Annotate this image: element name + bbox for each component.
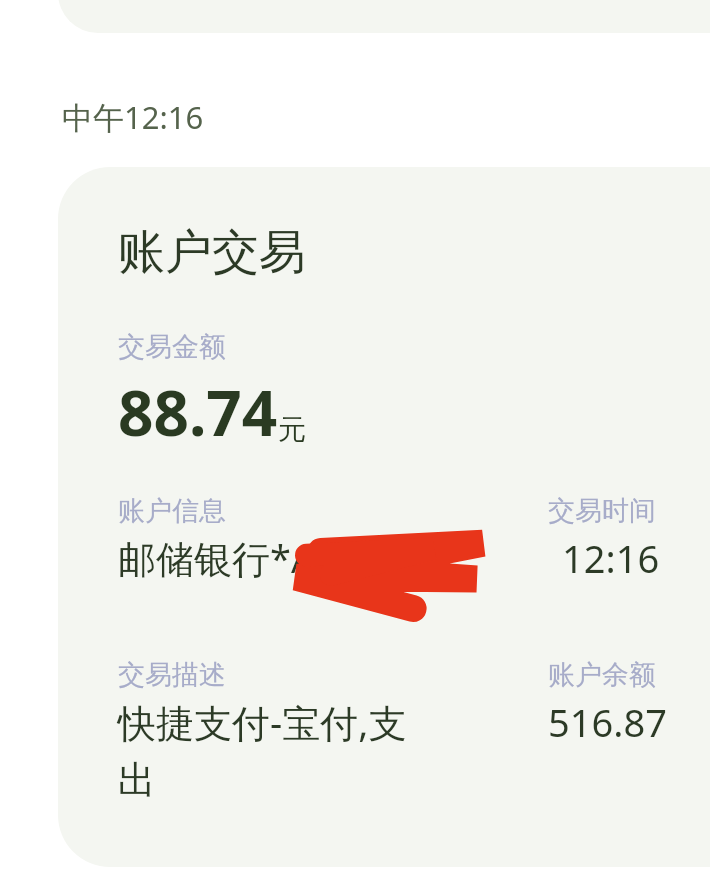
staticText: 交易金额 [118,330,226,364]
staticText: 邮储银行*A4D8 [118,532,387,584]
staticText: 12:16 [562,532,660,584]
staticText: 516.87 [548,696,667,748]
staticText: 账户余额 [548,658,656,692]
staticText: 交易描述 [118,658,226,692]
staticText: 元 [278,412,306,447]
staticText: 账户交易 [118,223,306,282]
staticText: 账户信息 [118,494,226,528]
staticText: 交易时间 [548,494,656,528]
staticText: 快捷支付-宝付,支 出 [118,696,468,804]
staticText: 中午12:16 [62,96,204,138]
staticText: 88.74 [118,370,278,454]
button[interactable]: 账户交易 [58,167,710,867]
other: Redacted account number [286,522,491,614]
